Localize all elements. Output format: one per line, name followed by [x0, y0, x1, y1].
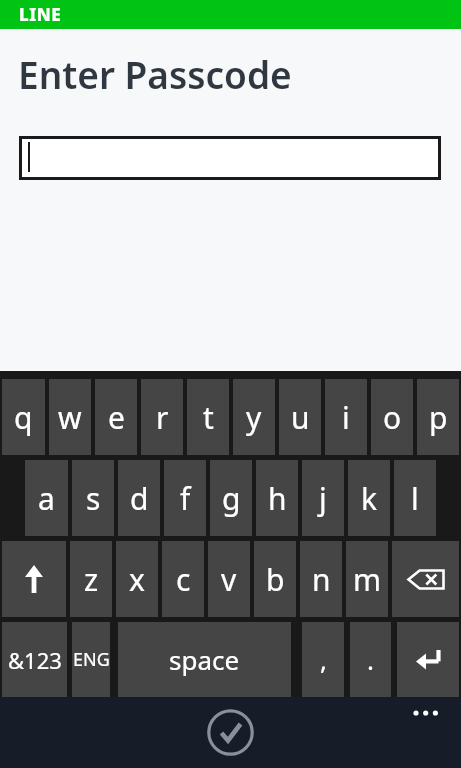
- staticText: m: [353, 559, 382, 600]
- button[interactable]: q: [2, 379, 45, 455]
- button[interactable]: [411, 703, 441, 723]
- button[interactable]: .: [350, 622, 391, 697]
- staticText: d: [130, 478, 149, 519]
- staticText: ,: [320, 642, 327, 677]
- button[interactable]: [19, 136, 441, 180]
- staticText: p: [429, 397, 448, 438]
- staticText: t: [203, 397, 214, 438]
- staticText: ENG: [73, 647, 110, 672]
- button[interactable]: b: [254, 541, 296, 617]
- button[interactable]: p: [417, 379, 459, 455]
- button[interactable]: LINE: [0, 0, 461, 29]
- staticText: v: [221, 559, 237, 600]
- button[interactable]: space: [118, 622, 291, 697]
- staticText: c: [176, 559, 191, 600]
- staticText: y: [246, 397, 262, 438]
- staticText: w: [58, 397, 82, 438]
- button[interactable]: z: [70, 541, 112, 617]
- button[interactable]: g: [210, 460, 252, 536]
- button[interactable]: r: [141, 379, 183, 455]
- staticText: h: [268, 478, 287, 519]
- button[interactable]: [207, 709, 254, 756]
- button[interactable]: ,: [302, 622, 344, 697]
- staticText: l: [411, 478, 419, 519]
- button[interactable]: a: [25, 460, 68, 536]
- button[interactable]: [2, 541, 66, 617]
- staticText: e: [108, 397, 125, 438]
- button[interactable]: [397, 622, 459, 697]
- staticText: x: [129, 559, 145, 600]
- button[interactable]: e: [95, 379, 137, 455]
- button[interactable]: &123: [2, 622, 67, 697]
- button[interactable]: v: [208, 541, 250, 617]
- staticText: &123: [8, 645, 62, 675]
- staticText: s: [86, 478, 101, 519]
- staticText: j: [319, 478, 327, 519]
- staticText: o: [383, 397, 402, 438]
- button[interactable]: c: [162, 541, 204, 617]
- button[interactable]: t: [187, 379, 229, 455]
- button[interactable]: u: [279, 379, 321, 455]
- button[interactable]: j: [302, 460, 344, 536]
- button[interactable]: n: [300, 541, 342, 617]
- button[interactable]: o: [371, 379, 413, 455]
- staticText: r: [156, 397, 169, 438]
- staticText: b: [266, 559, 285, 600]
- button[interactable]: x: [116, 541, 158, 617]
- staticText: z: [84, 559, 99, 600]
- button[interactable]: y: [233, 379, 275, 455]
- staticText: LINE: [19, 3, 62, 26]
- staticText: a: [38, 478, 55, 519]
- button[interactable]: l: [394, 460, 436, 536]
- button[interactable]: [392, 541, 459, 617]
- button[interactable]: s: [72, 460, 114, 536]
- button[interactable]: w: [49, 379, 91, 455]
- button[interactable]: ENG: [72, 622, 110, 697]
- button[interactable]: d: [118, 460, 160, 536]
- button[interactable]: i: [325, 379, 367, 455]
- staticText: u: [291, 397, 310, 438]
- staticText: f: [180, 478, 191, 519]
- staticText: i: [342, 397, 350, 438]
- button[interactable]: h: [256, 460, 298, 536]
- button[interactable]: f: [164, 460, 206, 536]
- staticText: Enter Passcode: [18, 49, 292, 99]
- staticText: space: [169, 642, 240, 677]
- staticText: n: [312, 559, 331, 600]
- staticText: k: [361, 478, 378, 519]
- staticText: .: [367, 642, 374, 677]
- button[interactable]: m: [346, 541, 388, 617]
- button[interactable]: k: [348, 460, 390, 536]
- staticText: q: [14, 397, 33, 438]
- staticText: g: [222, 478, 241, 519]
